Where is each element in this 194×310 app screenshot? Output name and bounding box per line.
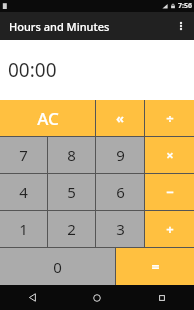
button[interactable]: 4 — [0, 174, 47, 210]
button[interactable]: More options — [168, 12, 194, 40]
staticText: ÷ — [166, 109, 174, 127]
button[interactable]: 1 — [0, 211, 47, 247]
button[interactable]: AC — [0, 100, 95, 136]
button[interactable]: + — [145, 211, 194, 247]
staticText: 6 — [116, 182, 125, 202]
button[interactable]: ÷ — [145, 100, 194, 136]
staticText: 00:00 — [8, 57, 57, 83]
button[interactable]: Recent apps — [129, 285, 194, 310]
staticText: Hours and Minutes — [9, 19, 110, 34]
staticText: + — [166, 220, 174, 238]
staticText: 8 — [67, 145, 76, 165]
staticText: × — [166, 146, 174, 164]
staticText: 5 — [67, 182, 76, 202]
staticText: 0 — [53, 257, 62, 277]
button[interactable]: × — [145, 137, 194, 173]
staticText: 9 — [116, 145, 125, 165]
staticText: 1 — [19, 219, 28, 239]
button[interactable]: − — [145, 174, 194, 210]
button[interactable]: 2 — [48, 211, 95, 247]
staticText: 7 — [19, 145, 28, 165]
button[interactable]: Home — [64, 285, 129, 310]
button[interactable]: 8 — [48, 137, 95, 173]
staticText: − — [166, 183, 174, 201]
button[interactable]: Back — [0, 285, 64, 310]
button[interactable]: 0 — [0, 248, 115, 285]
staticText: 4 — [19, 182, 28, 202]
button[interactable]: 9 — [96, 137, 144, 173]
staticText: 7:56 — [178, 1, 192, 11]
button[interactable]: « — [96, 100, 144, 136]
staticText: 3 — [116, 219, 125, 239]
button[interactable]: 5 — [48, 174, 95, 210]
staticText: 2 — [67, 219, 76, 239]
button[interactable]: 3 — [96, 211, 144, 247]
staticText: = — [151, 257, 160, 276]
button[interactable]: 7 — [0, 137, 47, 173]
button[interactable]: = — [116, 248, 194, 285]
staticText: « — [116, 109, 124, 127]
button[interactable]: 6 — [96, 174, 144, 210]
staticText: AC — [37, 107, 59, 130]
